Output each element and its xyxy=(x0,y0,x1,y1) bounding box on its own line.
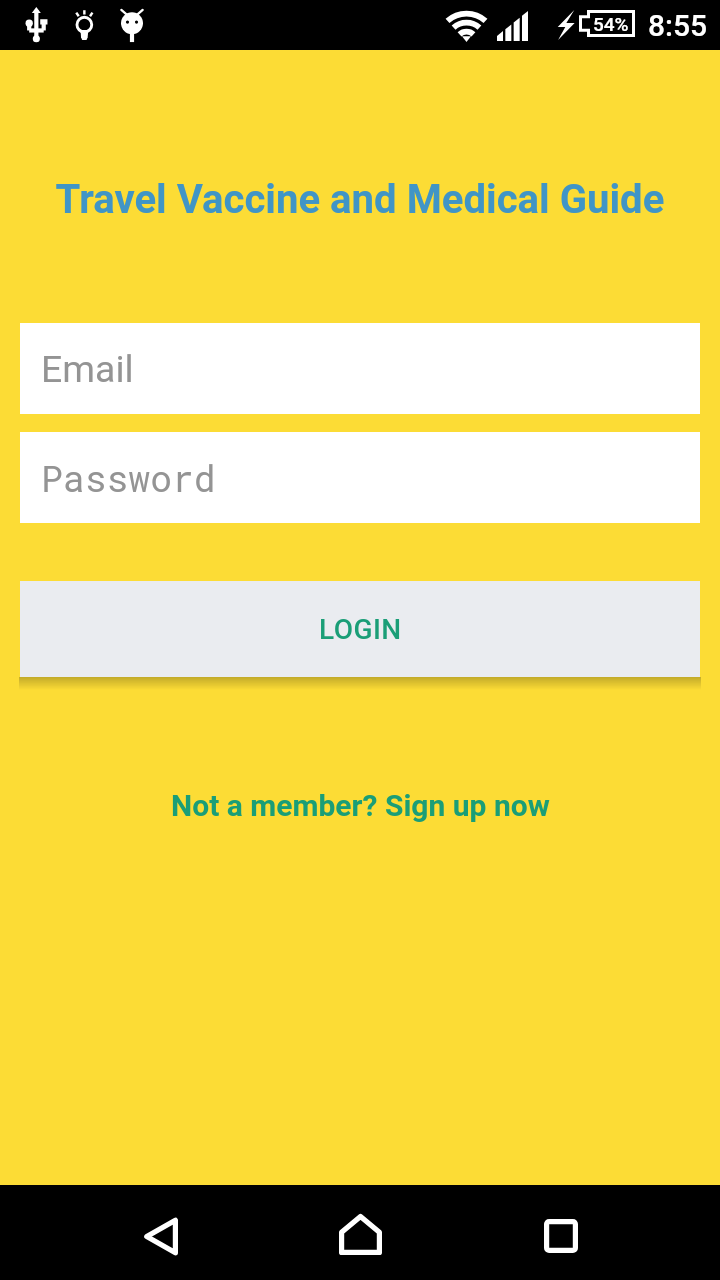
button[interactable]: Email xyxy=(20,323,700,414)
staticText: Email xyxy=(41,347,134,391)
button[interactable]: Not a member? Sign up now xyxy=(159,782,562,829)
button[interactable]: Home xyxy=(308,1192,412,1276)
button[interactable]: Password xyxy=(20,432,700,523)
button[interactable]: Back xyxy=(128,1197,192,1275)
staticText: LOGIN xyxy=(319,613,402,646)
staticText: 54% xyxy=(593,13,629,35)
staticText: 8:55 xyxy=(648,8,708,43)
button[interactable]: Recent apps xyxy=(512,1199,610,1273)
button[interactable]: LOGIN xyxy=(20,581,700,677)
staticText: Password xyxy=(41,454,216,502)
staticText: Travel Vaccine and Medical Guide xyxy=(0,176,720,223)
